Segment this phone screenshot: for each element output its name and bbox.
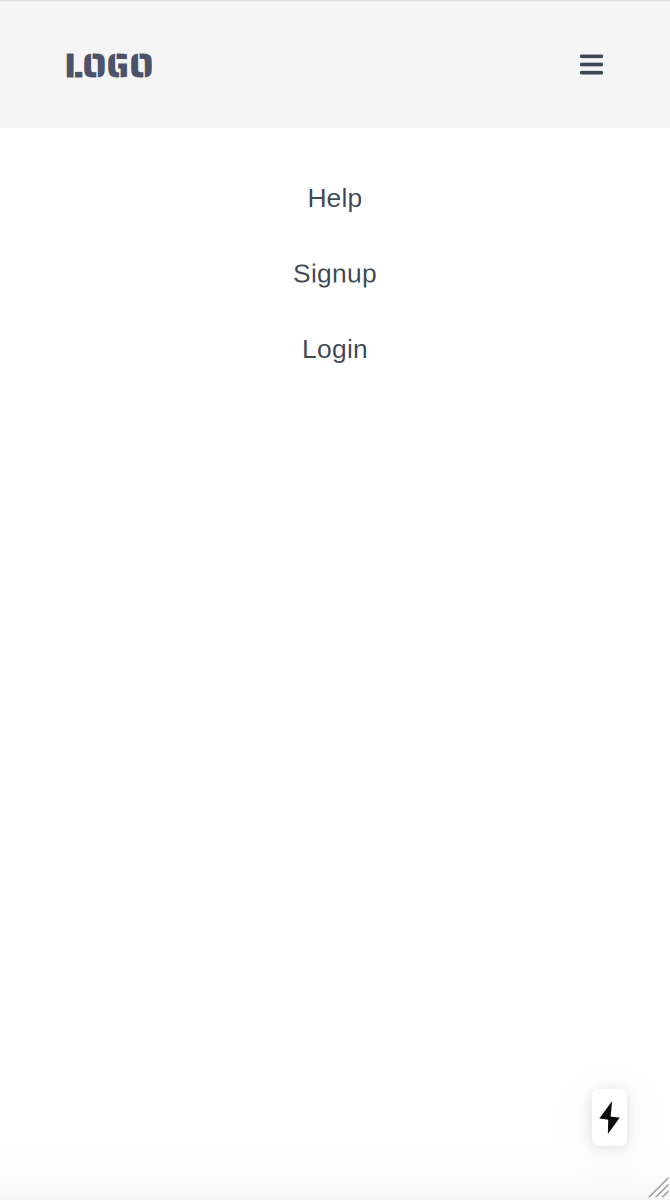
button[interactable]: LOGO <box>64 36 153 92</box>
staticText: Login <box>302 334 368 363</box>
button[interactable]: Quick actions <box>592 1089 627 1146</box>
button[interactable]: Signup <box>0 235 670 311</box>
button[interactable]: Menu <box>572 45 611 82</box>
button[interactable]: Login <box>0 311 670 386</box>
staticText: LOGO <box>64 39 153 92</box>
staticText: Signup <box>293 258 377 288</box>
staticText: Help <box>307 183 362 212</box>
button[interactable]: Help <box>0 160 670 235</box>
